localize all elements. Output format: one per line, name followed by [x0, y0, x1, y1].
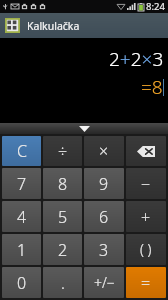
- staticText: +: [141, 206, 151, 228]
- staticText: C: [17, 140, 27, 162]
- button[interactable]: +: [126, 201, 166, 232]
- button[interactable]: 5: [43, 201, 82, 232]
- staticText: −: [141, 173, 151, 195]
- button[interactable]: 7: [2, 168, 41, 199]
- button[interactable]: ÷: [43, 136, 82, 166]
- staticText: 6: [99, 206, 109, 228]
- button[interactable]: 4: [2, 201, 41, 232]
- button[interactable]: ×: [84, 136, 124, 166]
- staticText: =: [141, 272, 151, 294]
- button[interactable]: Backspace: [126, 136, 166, 166]
- button[interactable]: 6: [84, 201, 124, 232]
- button[interactable]: 9: [84, 168, 124, 199]
- staticText: 9: [99, 173, 109, 195]
- button[interactable]: 3: [84, 234, 124, 265]
- button[interactable]: C: [2, 136, 41, 166]
- staticText: ( ): [140, 240, 152, 259]
- staticText: 5: [58, 206, 68, 228]
- staticText: 8:24: [146, 0, 165, 13]
- staticText: 1: [17, 239, 27, 261]
- staticText: ×: [99, 140, 109, 162]
- staticText: Kalkulačka: [27, 19, 80, 33]
- staticText: ÷: [58, 140, 68, 162]
- button[interactable]: +/−: [84, 267, 124, 298]
- staticText: .: [61, 272, 65, 294]
- staticText: 3: [99, 239, 109, 261]
- button[interactable]: =: [126, 267, 166, 298]
- button[interactable]: Expand history: [0, 123, 168, 134]
- staticText: +/−: [94, 273, 115, 292]
- button[interactable]: 8: [43, 168, 82, 199]
- button[interactable]: 1: [2, 234, 41, 265]
- staticText: 8: [58, 173, 68, 195]
- staticText: 2: [58, 239, 68, 261]
- staticText: 7: [17, 173, 27, 195]
- button[interactable]: ( ): [126, 234, 166, 265]
- staticText: 2+2×3: [109, 46, 164, 72]
- staticText: 0: [17, 272, 27, 294]
- staticText: 4: [17, 206, 27, 228]
- button[interactable]: 2: [43, 234, 82, 265]
- button[interactable]: 0: [2, 267, 41, 298]
- button[interactable]: −: [126, 168, 166, 199]
- staticText: =8: [141, 74, 163, 100]
- button[interactable]: .: [43, 267, 82, 298]
